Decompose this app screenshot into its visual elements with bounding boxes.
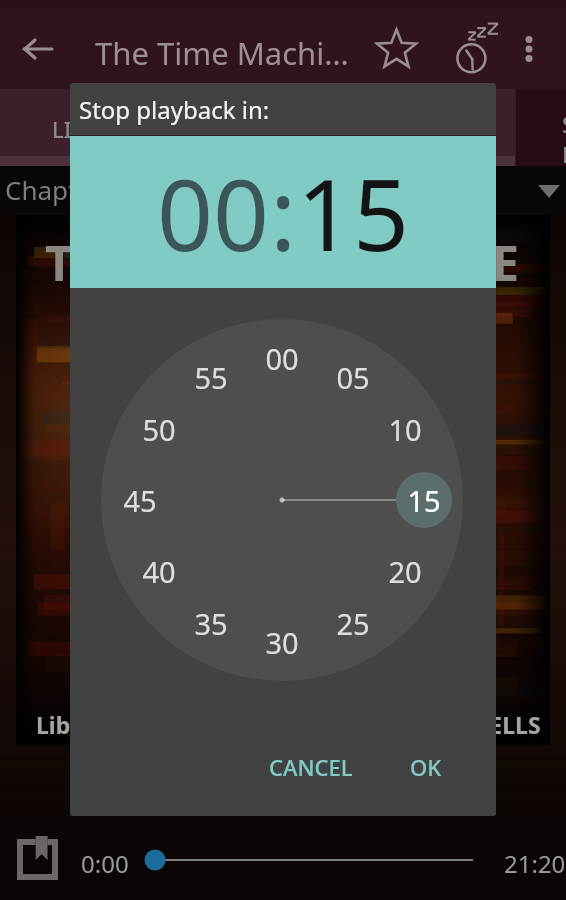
staticText: 35	[194, 604, 228, 643]
button[interactable]: LIBRARY	[0, 89, 515, 166]
button[interactable]: More options	[500, 8, 557, 89]
staticText: 15	[297, 146, 410, 279]
staticText: 45	[123, 481, 157, 520]
button[interactable]: CANCEL	[255, 744, 367, 790]
staticText: 00	[157, 146, 270, 279]
staticText: 10	[388, 410, 422, 449]
button[interactable]: OK	[396, 744, 456, 790]
staticText: 05	[336, 358, 370, 397]
button[interactable]: Sleep timer	[441, 8, 513, 89]
staticText: Stop playback in:	[79, 93, 270, 126]
staticText: 40	[142, 552, 176, 591]
staticText: THE TIME MACHINE	[45, 229, 520, 296]
staticText: 20	[388, 552, 422, 591]
button[interactable]: Favourite	[364, 8, 428, 89]
staticText: OK	[410, 752, 442, 782]
staticText: SUMMARY	[562, 109, 566, 186]
staticText: 50	[142, 410, 176, 449]
staticText: 25	[336, 604, 370, 643]
staticText: LIBRARY	[52, 114, 141, 144]
staticText: The Time Machi…	[95, 32, 349, 74]
button[interactable]: SUMMARY	[516, 89, 566, 166]
staticText: LibriVox	[36, 709, 130, 740]
staticText: 0:00	[81, 847, 129, 880]
staticText: 55	[194, 358, 228, 397]
staticText: CANCEL	[269, 752, 353, 782]
staticText: 30	[265, 623, 299, 662]
button[interactable]: Bookmark	[17, 839, 58, 880]
button[interactable]: Back	[0, 8, 76, 89]
staticText: H. G. WELLS	[408, 709, 541, 740]
staticText: Chapter 1	[5, 172, 125, 207]
staticText: 21:20	[504, 847, 566, 880]
staticText: 00	[265, 339, 299, 378]
button[interactable]: Chapter 1	[0, 166, 566, 215]
staticText: :	[270, 146, 297, 279]
button[interactable]: Seek bar	[132, 844, 492, 876]
staticText: 15	[407, 481, 441, 520]
